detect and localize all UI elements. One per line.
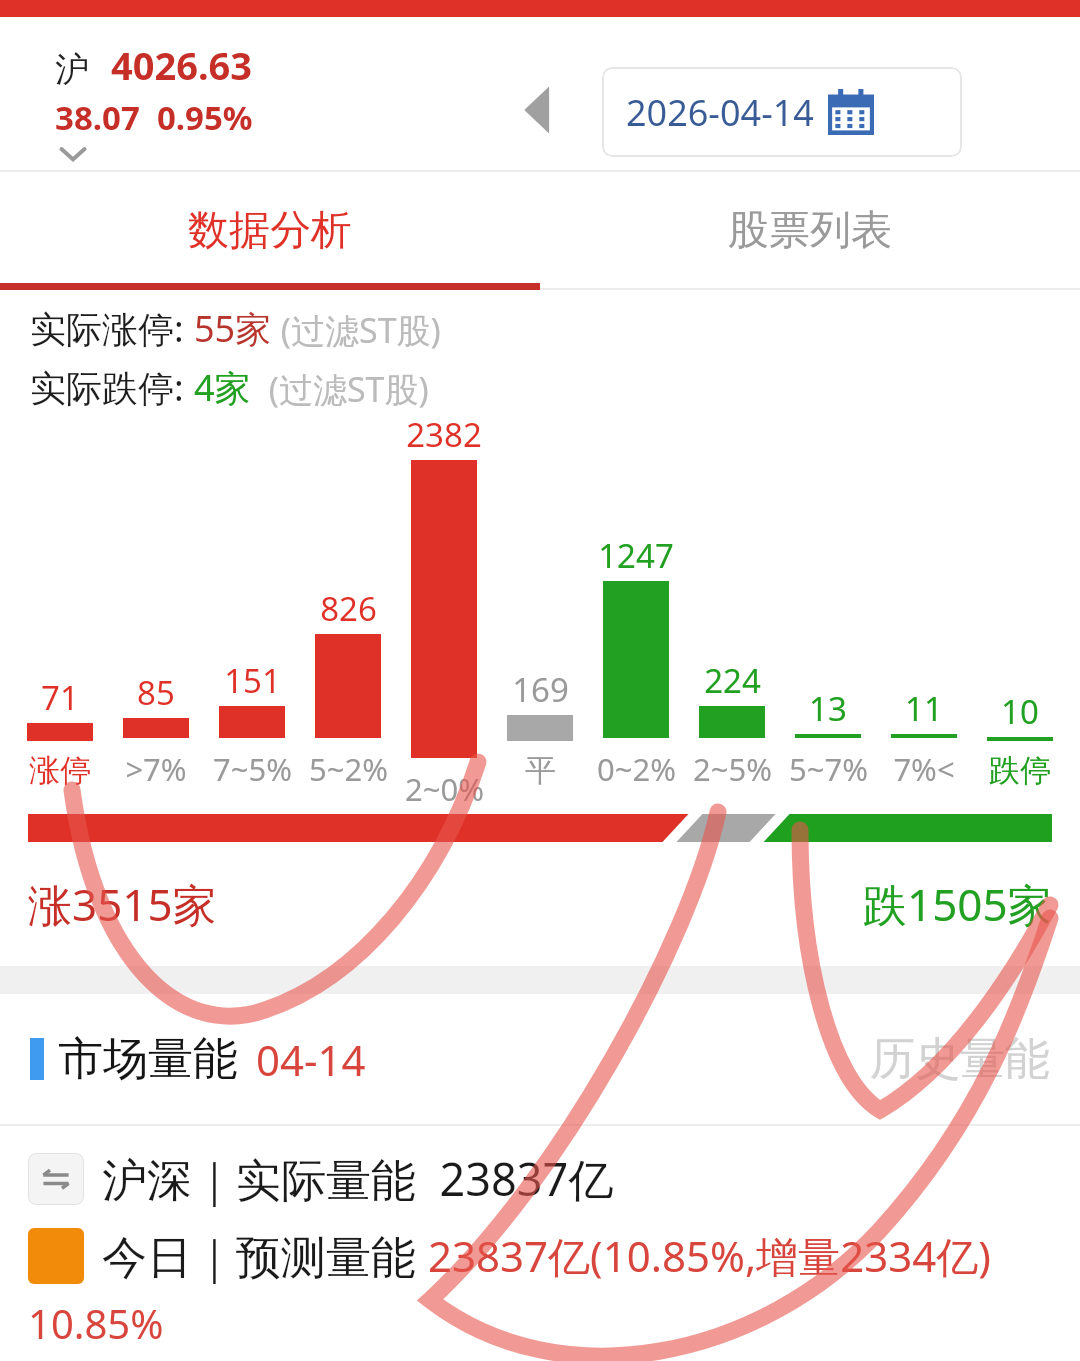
staticText: 224 — [704, 658, 761, 703]
button[interactable]: 11 — [876, 412, 972, 802]
staticText: 826 — [320, 586, 377, 631]
staticText: 跌1505家 — [863, 874, 1052, 934]
staticText: 7~5% — [213, 748, 292, 790]
button[interactable]: 71 — [12, 412, 108, 802]
staticText: 85 — [137, 670, 175, 715]
staticText: 沪深｜实际量能 23837亿 — [102, 1148, 614, 1209]
staticText: 38.07 0.95% — [55, 95, 253, 140]
button[interactable]: 历史量能 — [870, 1031, 1050, 1088]
staticText: 市场量能 — [58, 1031, 238, 1088]
staticText: 04-14 — [256, 1031, 366, 1088]
staticText: 实际跌停: — [30, 363, 194, 412]
staticText: 2026-04-14 — [626, 88, 814, 137]
button[interactable]: 169 — [492, 412, 588, 802]
staticText: 151 — [224, 658, 281, 703]
staticText: 沪 — [55, 48, 89, 91]
button[interactable]: 2026-04-14 — [602, 67, 962, 157]
button[interactable]: Expand — [55, 145, 91, 165]
staticText: 5~2% — [309, 748, 388, 790]
staticText: 1247 — [598, 533, 674, 578]
staticText: 2~5% — [693, 748, 772, 790]
staticText: 历史量能 — [870, 1031, 1050, 1088]
button[interactable]: 2382 — [396, 412, 492, 802]
staticText: 5~7% — [789, 748, 868, 790]
staticText: 55家 — [194, 304, 272, 353]
button[interactable]: 数据分析 — [0, 172, 540, 290]
button[interactable]: 13 — [780, 412, 876, 802]
button[interactable]: 151 — [204, 412, 300, 802]
staticText: 10 — [1001, 689, 1039, 734]
staticText: 169 — [512, 667, 569, 712]
button[interactable]: 股票列表 — [540, 172, 1080, 290]
staticText: 实际涨停: — [30, 304, 194, 353]
staticText: 71 — [41, 675, 79, 720]
button[interactable]: 85 — [108, 412, 204, 802]
staticText: 跌停 — [989, 751, 1051, 790]
staticText: 23837亿(10.85%,增量2334亿) — [428, 1227, 991, 1284]
staticText: (过滤ST股) — [251, 366, 429, 412]
staticText: 平 — [525, 751, 556, 790]
button[interactable]: 826 — [300, 412, 396, 802]
staticText: 数据分析 — [188, 205, 352, 257]
staticText: (过滤ST股) — [272, 307, 441, 353]
staticText: 涨停 — [29, 751, 91, 790]
staticText: 2382 — [406, 412, 482, 457]
staticText: 4家 — [194, 363, 251, 412]
staticText: 13 — [809, 686, 847, 731]
staticText: 今日｜预测量能 — [102, 1225, 428, 1286]
button[interactable]: 224 — [684, 412, 780, 802]
button[interactable]: 10 — [972, 412, 1068, 802]
staticText: >7% — [125, 748, 187, 790]
button[interactable]: Previous day — [516, 79, 562, 141]
staticText: 10.85% — [28, 1296, 164, 1350]
staticText: 2~0% — [405, 768, 484, 802]
staticText: 7%< — [893, 748, 955, 790]
staticText: 11 — [905, 686, 943, 731]
staticText: 0~2% — [597, 748, 676, 790]
staticText: 股票列表 — [728, 205, 892, 257]
staticText: 涨3515家 — [28, 874, 217, 934]
staticText: 4026.63 — [111, 39, 253, 91]
button[interactable]: 1247 — [588, 412, 684, 802]
